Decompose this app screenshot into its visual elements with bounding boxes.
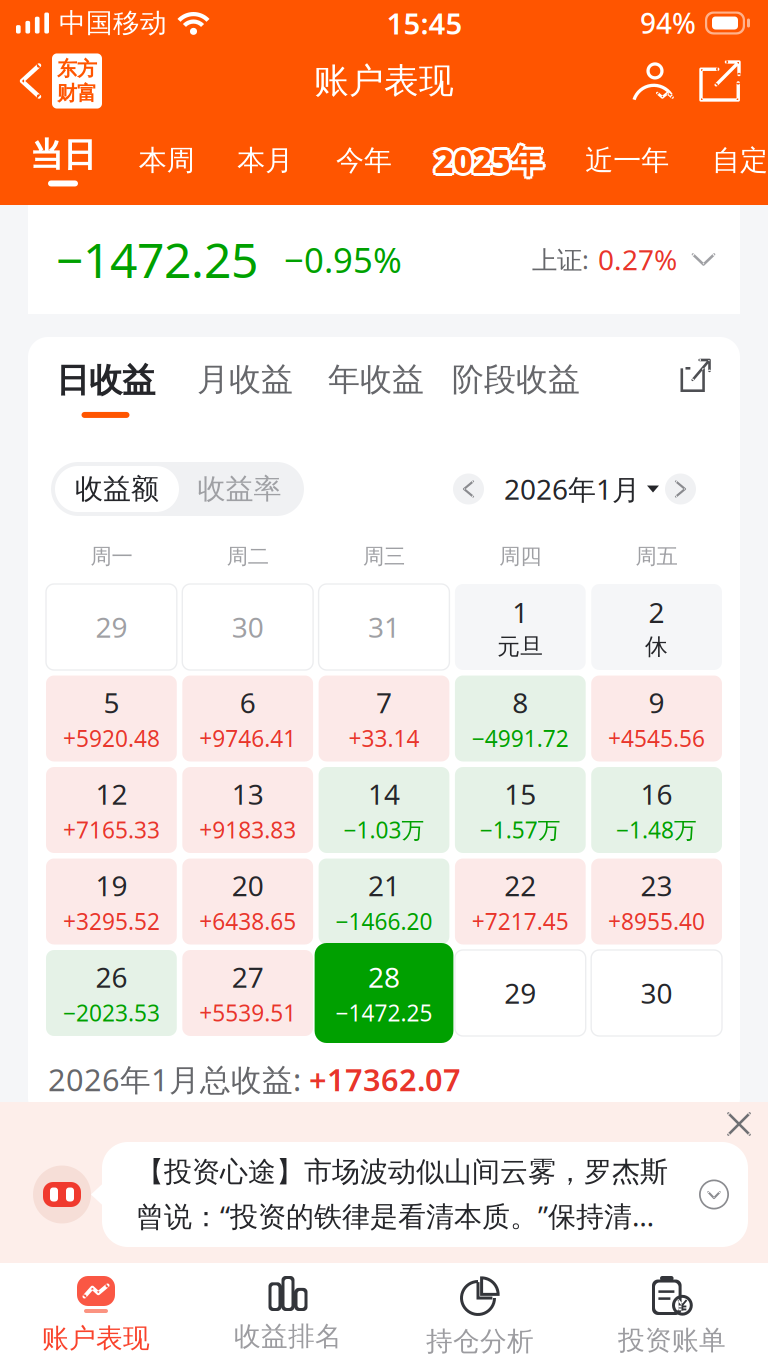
button[interactable]: 年收益 (328, 360, 424, 426)
staticText: 周一 (90, 543, 132, 570)
button[interactable]: 21 (319, 858, 449, 944)
staticText: 20 (232, 867, 264, 904)
button[interactable]: 22 (455, 858, 586, 944)
staticText: 自定 (712, 143, 768, 178)
staticText: 0.27% (598, 241, 677, 278)
button[interactable]: 展开 (680, 1142, 748, 1247)
staticText: 周四 (499, 543, 541, 570)
button[interactable]: 20 (182, 858, 313, 944)
staticText: 2025年 (437, 141, 545, 184)
button[interactable]: 6 (182, 675, 313, 761)
button[interactable]: 27 (182, 950, 313, 1036)
staticText: 29 (95, 608, 127, 646)
staticText: −4991.72 (472, 723, 569, 753)
staticText: 27 (232, 958, 264, 996)
button[interactable]: 26 (46, 950, 177, 1036)
staticText: 22 (504, 867, 536, 904)
staticText: 2025年 (435, 142, 543, 185)
button[interactable]: 23 (591, 858, 722, 944)
staticText: 收益率 (197, 472, 281, 506)
staticText: 近一年 (585, 143, 669, 178)
staticText: −0.95% (284, 236, 402, 282)
staticText: +3295.52 (63, 906, 160, 936)
button[interactable]: 上一月 (453, 473, 484, 504)
button[interactable]: 5 (46, 675, 177, 761)
button[interactable]: 账户表现 (0, 1263, 192, 1366)
staticText: 2 (649, 593, 665, 631)
button[interactable]: 19 (46, 858, 177, 944)
button[interactable]: 本周 (139, 125, 195, 195)
staticText: +33.14 (348, 723, 419, 753)
button[interactable]: 我的 (626, 52, 684, 110)
button[interactable]: 本月 (237, 125, 293, 195)
button[interactable]: 7 (319, 675, 449, 761)
button[interactable]: 16 (591, 767, 722, 853)
staticText: 财富 (57, 81, 97, 106)
staticText: 12 (95, 775, 127, 813)
staticText: 元旦 (497, 633, 543, 660)
button[interactable]: 阶段收益 (452, 360, 580, 426)
button[interactable]: 12 (46, 767, 177, 853)
staticText: +17362.07 (309, 1059, 461, 1100)
button[interactable]: 收益率 (179, 466, 300, 512)
staticText: 2025年 (432, 141, 540, 184)
staticText: 21 (368, 867, 400, 904)
button[interactable]: 8 (455, 675, 586, 761)
button[interactable]: 下一月 (665, 473, 696, 504)
button[interactable]: 30 (182, 584, 313, 670)
staticText: 2025年 (432, 139, 540, 182)
staticText: +5920.48 (63, 723, 160, 753)
staticText: 2025年 (435, 136, 543, 179)
staticText: 年收益 (328, 360, 424, 399)
button[interactable]: 分享 (676, 360, 714, 426)
button[interactable]: 月收益 (197, 360, 293, 426)
button[interactable]: 当日 (30, 125, 96, 195)
button[interactable]: 投资账单 (576, 1263, 768, 1366)
staticText: +6438.65 (199, 906, 296, 936)
button[interactable]: 近一年 (585, 125, 669, 195)
staticText: 2025年 (435, 139, 543, 182)
button[interactable]: 今年 (336, 125, 392, 195)
button[interactable]: 30 (591, 950, 722, 1036)
button[interactable]: 29 (455, 950, 586, 1036)
button[interactable]: 2 (591, 584, 722, 670)
staticText: +9183.83 (199, 814, 296, 845)
button[interactable]: 28 (319, 950, 449, 1036)
button[interactable]: 13 (182, 767, 313, 853)
button[interactable]: 15 (455, 767, 586, 853)
button[interactable]: 1 (455, 584, 586, 670)
button[interactable]: 持仓分析 (384, 1263, 576, 1366)
staticText: 5 (103, 684, 119, 721)
button[interactable]: 14 (319, 767, 449, 853)
staticText: 本周 (139, 143, 195, 178)
staticText: 2025年 (432, 137, 540, 180)
staticText: 周三 (363, 543, 405, 570)
button[interactable]: 收益排名 (192, 1263, 384, 1366)
staticText: 94% (640, 4, 696, 42)
staticText: 曾说：“投资的铁律是看清本质。”保持清… (136, 1197, 654, 1234)
button[interactable]: 29 (46, 584, 177, 670)
staticText: +7217.45 (472, 906, 569, 936)
button[interactable]: 自定 (712, 125, 768, 195)
staticText: 7 (376, 684, 392, 721)
button[interactable]: 31 (319, 584, 449, 670)
button[interactable]: 收益额 (55, 466, 179, 512)
staticText: 14 (368, 775, 400, 813)
staticText: 2026年1月 (504, 470, 640, 508)
staticText: 9 (649, 684, 665, 721)
staticText: 账户表现 (314, 60, 454, 102)
staticText: 周五 (636, 543, 678, 570)
staticText: −1.03万 (343, 814, 424, 845)
button[interactable]: 9 (591, 675, 722, 761)
button[interactable]: 分享 (694, 52, 746, 110)
staticText: 本月 (237, 143, 293, 178)
button[interactable]: 2025年 (435, 125, 543, 195)
button[interactable]: 日收益 (56, 360, 155, 426)
button[interactable]: 上证: (532, 241, 714, 278)
staticText: 日收益 (56, 360, 155, 401)
staticText: 8 (512, 684, 528, 721)
staticText: 投资账单 (618, 1324, 726, 1357)
button[interactable]: 关闭 (710, 1102, 768, 1146)
button[interactable]: 2026年1月 (504, 470, 659, 508)
button[interactable]: 返回 东方财富 (22, 52, 138, 110)
